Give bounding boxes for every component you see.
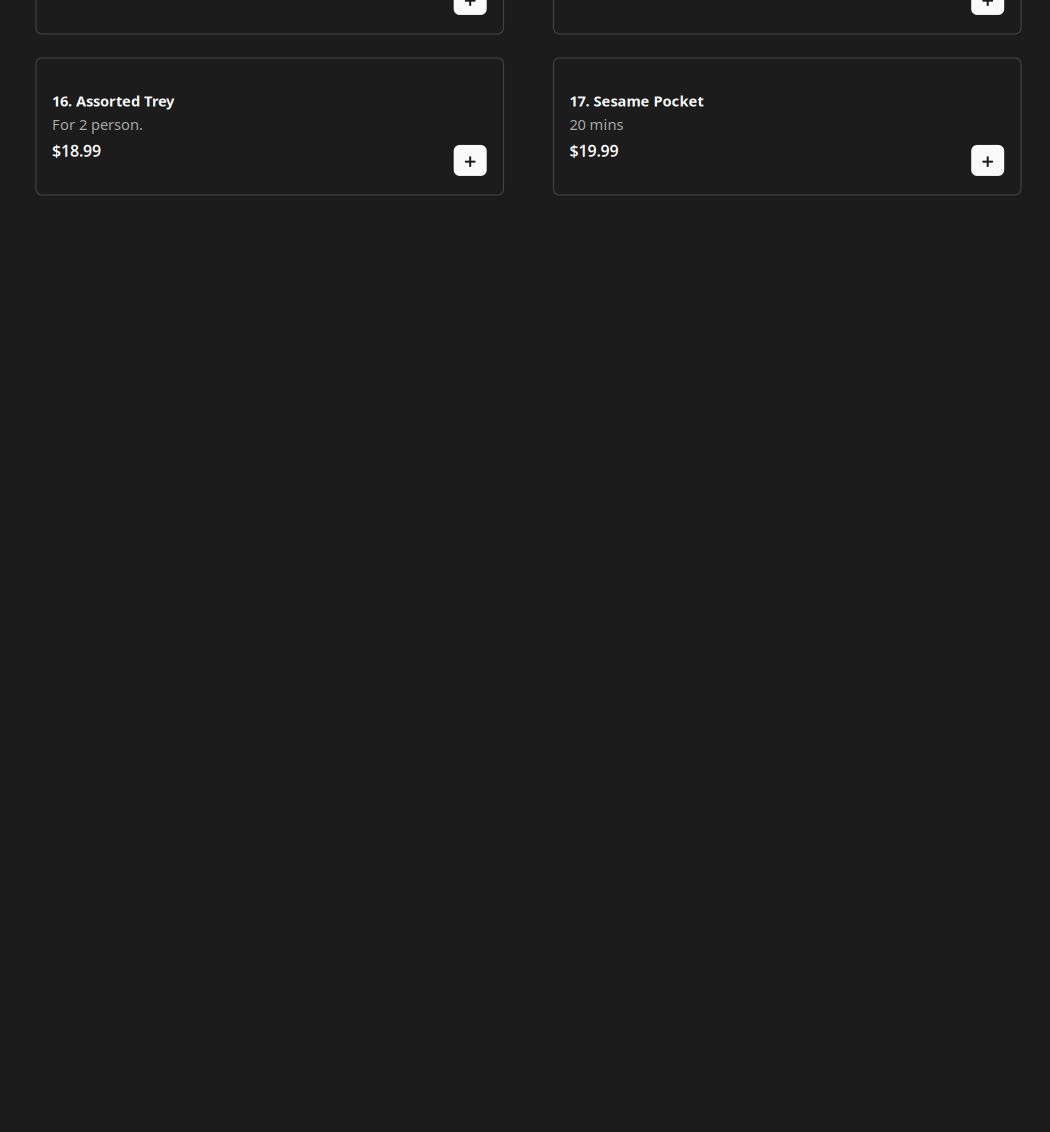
button[interactable]: 16. Assorted Trey (36, 58, 503, 195)
staticText: 16. Assorted Trey (52, 91, 174, 110)
button[interactable]: 15. Garden Wrap (553, 0, 1021, 34)
staticText: 17. Sesame Pocket (569, 91, 703, 110)
button[interactable]: 17. Sesame Pocket (553, 58, 1021, 195)
button[interactable]: Add 15. Garden Wrap to order (971, 0, 1004, 15)
staticText: $18.99 (52, 140, 101, 161)
button[interactable]: Add 16. Assorted Trey to order (454, 145, 487, 176)
staticText: $19.99 (569, 140, 618, 161)
staticText: 20 mins (569, 114, 623, 134)
button[interactable]: Add 14. Chicken Box to order (454, 0, 487, 15)
staticText: For 2 person. (52, 114, 143, 134)
button[interactable]: Add 17. Sesame Pocket to order (971, 145, 1004, 176)
button[interactable]: 14. Chicken Box (36, 0, 503, 34)
